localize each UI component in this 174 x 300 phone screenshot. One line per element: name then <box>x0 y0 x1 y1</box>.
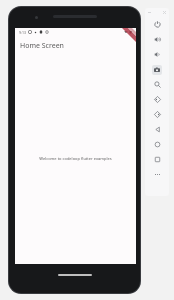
button[interactable]: Volume up <box>145 32 169 47</box>
button[interactable]: More <box>145 167 169 182</box>
button[interactable]: Power <box>145 17 169 32</box>
button[interactable]: Rotate left <box>145 92 169 107</box>
button[interactable]: Close <box>163 11 166 14</box>
button[interactable]: Zoom <box>145 77 169 92</box>
button[interactable]: Home <box>145 137 169 152</box>
button[interactable]: Home Screen <box>15 38 136 53</box>
button[interactable]: Overview <box>145 152 169 167</box>
button[interactable]: Volume down <box>145 47 169 62</box>
button[interactable]: Back <box>145 122 169 137</box>
staticText: Welcome to codeloop flutter examples <box>39 156 112 161</box>
button[interactable]: Take screenshot <box>145 62 169 77</box>
staticText: Home Screen <box>20 41 64 51</box>
button[interactable]: Rotate right <box>145 107 169 122</box>
staticText: 9:13 <box>19 30 26 35</box>
